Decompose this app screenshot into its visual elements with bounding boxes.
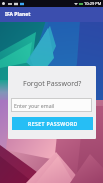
staticText: Enter your email xyxy=(14,102,55,109)
button[interactable]: RESET PASSWORD xyxy=(12,117,93,130)
staticText: IFA Planet xyxy=(5,11,31,18)
button[interactable]: Enter your email xyxy=(11,98,92,112)
staticText: Forgot Password? xyxy=(23,79,82,89)
staticText: 10:29 PM xyxy=(84,1,102,6)
staticText: RESET PASSWORD xyxy=(28,120,78,127)
